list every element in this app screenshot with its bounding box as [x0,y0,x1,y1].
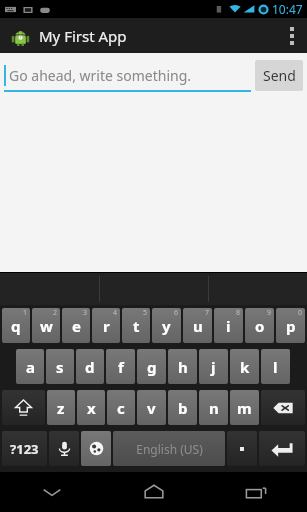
staticText: f [118,357,124,377]
staticText: Send [263,66,296,85]
button[interactable]: s [46,349,74,384]
staticText: 4 [113,308,118,318]
button[interactable]: Enter [259,431,305,466]
button[interactable]: f [106,349,135,384]
button[interactable]: r [92,308,120,343]
button[interactable]: m [230,390,259,425]
staticText: y [162,316,171,336]
button[interactable]: q [2,308,30,343]
staticText: j [211,357,216,377]
staticText: n [209,398,219,418]
staticText: v [147,398,156,418]
staticText: h [178,357,188,377]
button[interactable]: Voice input [49,431,79,466]
staticText: 10:47 [272,1,303,17]
staticText: g [147,357,157,377]
button[interactable]: Change language [81,431,111,466]
staticText: English (US) [136,441,203,457]
button[interactable]: j [199,349,228,384]
button[interactable]: d [76,349,104,384]
button[interactable]: i [214,308,243,343]
button[interactable]: Symbols [2,431,47,466]
staticText: 3 [83,308,88,318]
staticText: 0 [298,308,303,318]
button[interactable]: Home [103,472,205,512]
staticText: q [11,316,21,336]
button[interactable]: o [245,308,274,343]
staticText: 5 [143,308,148,318]
button[interactable]: Go ahead, write something. [4,58,251,92]
button[interactable]: Delete [261,390,305,425]
button[interactable]: Send [255,60,303,91]
staticText: e [72,316,81,336]
button[interactable]: l [261,349,290,384]
staticText: w [40,316,53,336]
button[interactable]: Hide keyboard [0,472,103,512]
button[interactable]: x [77,390,105,425]
button[interactable]: n [199,390,228,425]
staticText: t [133,316,140,336]
button[interactable]: a [16,349,44,384]
button[interactable]: Recent apps [205,472,307,512]
staticText: p [286,316,296,336]
button[interactable]: y [152,308,181,343]
staticText: u [193,316,203,336]
button[interactable]: Shift [2,390,45,425]
button[interactable]: p [276,308,305,343]
staticText: Go ahead, write something. [9,66,192,85]
staticText: 6 [174,308,179,318]
staticText: 1 [23,308,28,318]
button[interactable]: t [122,308,150,343]
button[interactable]: u [183,308,212,343]
staticText: 2 [53,308,58,318]
staticText: 9 [267,308,272,318]
staticText: b [178,398,188,418]
button[interactable]: w [32,308,60,343]
button[interactable]: Period [227,431,257,466]
staticText: r [103,316,110,336]
staticText: ?123 [10,440,39,458]
staticText: d [85,357,95,377]
staticText: l [273,357,278,377]
button[interactable]: c [107,390,135,425]
staticText: 7 [205,308,210,318]
staticText: m [237,398,252,418]
staticText: i [226,316,231,336]
button[interactable]: g [137,349,166,384]
button[interactable]: z [47,390,75,425]
staticText: o [255,316,265,336]
staticText: k [240,357,250,377]
staticText: a [26,357,35,377]
staticText: My First App [39,26,127,46]
button[interactable]: h [168,349,197,384]
button[interactable]: k [230,349,259,384]
staticText: 8 [236,308,241,318]
button[interactable]: e [62,308,90,343]
staticText: s [56,357,64,377]
button[interactable]: More options [277,18,307,53]
button[interactable]: Space [113,431,225,466]
button[interactable]: v [137,390,166,425]
button[interactable]: b [168,390,197,425]
staticText: x [87,398,96,418]
staticText: z [57,398,65,418]
staticText: c [117,398,125,418]
